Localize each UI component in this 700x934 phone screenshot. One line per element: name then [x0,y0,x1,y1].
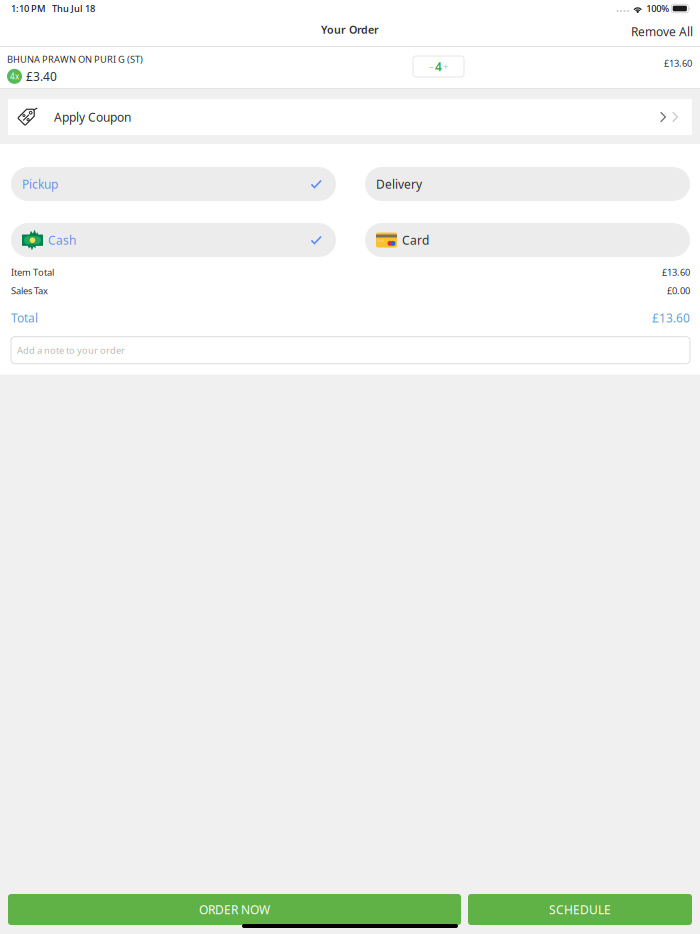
staticText: – [429,60,434,73]
staticText: Delivery [376,176,422,192]
staticText: 4 [435,58,442,74]
staticText: Apply Coupon [54,109,131,125]
staticText: £3.40 [26,68,57,84]
button[interactable]: SCHEDULE [468,894,692,925]
staticText: Cash [48,232,76,248]
button[interactable]: ORDER NOW [8,894,461,925]
button[interactable]: Apply Coupon [0,99,700,135]
staticText: 1:10 PM [11,2,46,15]
staticText: £13.60 [664,57,692,69]
staticText: Total [11,310,38,326]
staticText: + [443,60,448,73]
button[interactable]: Delivery [365,167,690,201]
staticText: £0.00 [667,284,690,297]
staticText: BHUNA PRAWN ON PURI G (ST) [7,53,143,65]
button[interactable]: Pickup [11,167,336,201]
staticText: Pickup [22,176,58,192]
button[interactable]: – [413,56,464,77]
button[interactable]: Cash [11,223,336,257]
staticText: SCHEDULE [549,901,611,917]
staticText: Your Order [321,22,379,37]
staticText: ORDER NOW [199,901,270,917]
staticText: Sales Tax [11,284,48,297]
staticText: Item Total [11,266,54,278]
staticText: £13.60 [662,266,690,278]
staticText: Add a note to your order [17,344,125,356]
staticText: Thu Jul 18 [52,2,95,15]
staticText: 4x [10,71,19,82]
staticText: 100% [646,2,669,15]
staticText: £13.60 [652,310,690,326]
button[interactable]: Remove All [624,18,700,44]
staticText: Card [402,232,429,248]
button[interactable]: Card [365,223,690,257]
staticText: Remove All [631,23,693,39]
